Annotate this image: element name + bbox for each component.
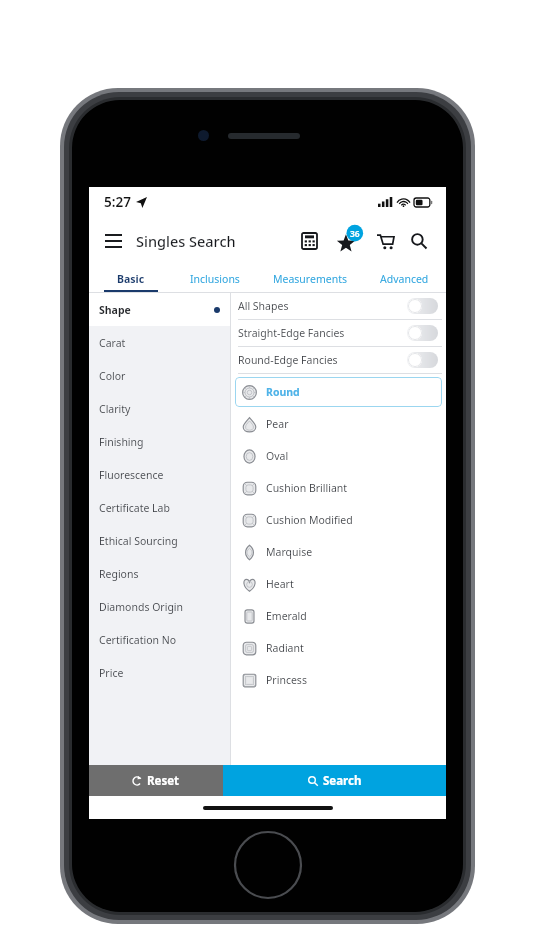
staticText: Heart xyxy=(266,577,294,591)
button[interactable]: Pear xyxy=(235,409,442,439)
staticText: Cushion Modified xyxy=(266,513,353,527)
button[interactable]: Certificate Lab xyxy=(89,491,230,524)
staticText: Marquise xyxy=(266,545,313,559)
button[interactable]: Measurements xyxy=(257,264,362,293)
staticText: Search xyxy=(323,773,362,789)
button[interactable]: Finishing xyxy=(89,425,230,458)
button[interactable]: Search xyxy=(404,226,434,256)
staticText: Reset xyxy=(147,773,180,789)
button[interactable]: Calculator xyxy=(294,226,324,256)
staticText: Singles Search xyxy=(136,231,236,251)
button[interactable]: All Shapes xyxy=(231,293,446,320)
button[interactable]: Clarity xyxy=(89,392,230,425)
staticText: Radiant xyxy=(266,641,304,655)
button[interactable]: Heart xyxy=(235,569,442,599)
button[interactable]: Marquise xyxy=(235,537,442,567)
button[interactable]: Round-Edge Fancies xyxy=(231,347,446,374)
staticText: Certification No xyxy=(99,633,177,647)
button[interactable]: Price xyxy=(89,656,230,689)
staticText: Clarity xyxy=(99,402,131,416)
button[interactable]: Oval xyxy=(235,441,442,471)
button[interactable]: Advanced xyxy=(362,264,446,293)
button[interactable]: Diamonds Origin xyxy=(89,590,230,623)
staticText: Pear xyxy=(266,417,289,431)
button[interactable]: Shape xyxy=(89,293,230,326)
staticText: Shape xyxy=(99,303,131,317)
staticText: Basic xyxy=(117,272,145,286)
staticText: Price xyxy=(99,666,124,680)
button[interactable]: Basic xyxy=(89,264,173,293)
staticText: Ethical Sourcing xyxy=(99,534,178,548)
button[interactable]: Cart xyxy=(370,226,400,256)
button[interactable]: Straight-Edge Fancies xyxy=(231,320,446,347)
staticText: Cushion Brilliant xyxy=(266,481,348,495)
staticText: Diamonds Origin xyxy=(99,600,184,614)
staticText: 5:27 xyxy=(104,193,131,211)
button[interactable]: Regions xyxy=(89,557,230,590)
button[interactable]: Inclusions xyxy=(173,264,257,293)
button[interactable]: Menu xyxy=(97,225,129,257)
button[interactable]: Fluorescence xyxy=(89,458,230,491)
staticText: Inclusions xyxy=(190,272,240,286)
staticText: Princess xyxy=(266,673,307,687)
staticText: Fluorescence xyxy=(99,468,164,482)
staticText: Color xyxy=(99,369,126,383)
staticText: All Shapes xyxy=(238,299,289,313)
staticText: Measurements xyxy=(273,272,347,286)
staticText: Oval xyxy=(266,449,289,463)
button[interactable]: Ethical Sourcing xyxy=(89,524,230,557)
staticText: Certificate Lab xyxy=(99,501,170,515)
button[interactable]: Princess xyxy=(235,665,442,695)
button[interactable]: Search xyxy=(223,765,446,796)
staticText: Round-Edge Fancies xyxy=(238,353,338,367)
button[interactable]: Color xyxy=(89,359,230,392)
staticText: Advanced xyxy=(380,272,429,286)
button[interactable]: Favorites xyxy=(331,224,365,258)
button[interactable]: Radiant xyxy=(235,633,442,663)
button[interactable]: Certification No xyxy=(89,623,230,656)
button[interactable]: Round xyxy=(235,377,442,407)
button[interactable]: Cushion Modified xyxy=(235,505,442,535)
button[interactable]: Emerald xyxy=(235,601,442,631)
staticText: 36 xyxy=(350,228,360,240)
button[interactable]: Carat xyxy=(89,326,230,359)
staticText: Regions xyxy=(99,567,139,581)
staticText: Straight-Edge Fancies xyxy=(238,326,345,340)
staticText: Round xyxy=(266,385,300,399)
staticText: Finishing xyxy=(99,435,144,449)
staticText: Carat xyxy=(99,336,126,350)
button[interactable]: Cushion Brilliant xyxy=(235,473,442,503)
staticText: Emerald xyxy=(266,609,307,623)
button[interactable]: Reset xyxy=(89,765,223,796)
